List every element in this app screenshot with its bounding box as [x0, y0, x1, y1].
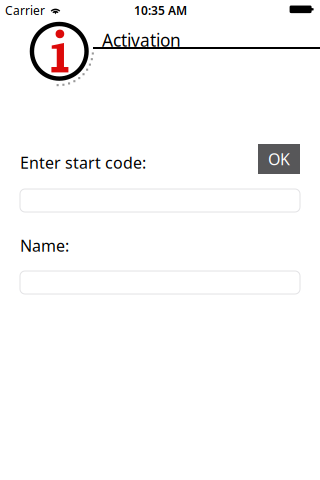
button[interactable]: OK — [258, 144, 300, 174]
staticText: Activation — [102, 29, 181, 52]
staticText: Enter start code: — [20, 152, 146, 173]
button[interactable]: Start code — [20, 189, 300, 212]
staticText: Name: — [20, 235, 69, 256]
button[interactable]: Name — [20, 271, 300, 294]
staticText: Carrier — [5, 2, 45, 18]
staticText: 10:35 AM — [134, 2, 187, 18]
staticText: OK — [268, 148, 290, 170]
